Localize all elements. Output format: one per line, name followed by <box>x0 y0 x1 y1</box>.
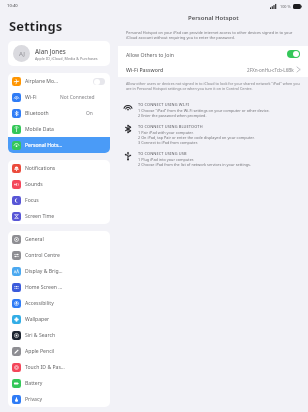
button[interactable]: Allow Others to Join toggle <box>287 50 300 58</box>
button[interactable]: Privacy <box>8 391 110 407</box>
button[interactable]: Battery <box>8 375 110 391</box>
button[interactable]: Display & Brightness <box>8 263 110 279</box>
button[interactable]: Wallpaper <box>8 311 110 327</box>
staticText: Battery <box>25 380 43 387</box>
staticText: 1 Plug iPad into your computer. <box>138 157 194 162</box>
button[interactable]: AJ <box>8 41 110 66</box>
other: Bluetooth <box>123 124 133 134</box>
button[interactable]: Airplane Mode toggle <box>93 78 105 85</box>
other: Wi-Fi <box>123 102 133 112</box>
staticText: Airplane Mode <box>25 78 59 85</box>
staticText: Wallpaper <box>25 316 50 323</box>
staticText: 2 Choose iPad from the list of network s… <box>138 162 251 167</box>
button[interactable]: Control Centre <box>8 247 110 263</box>
staticText: Screen Time <box>25 213 55 220</box>
staticText: Allow Others to Join <box>126 51 287 58</box>
staticText: On <box>86 110 93 117</box>
staticText: 2 On iPad, tap Pair or enter the code di… <box>138 135 255 140</box>
button[interactable]: General <box>8 231 110 247</box>
button[interactable]: Bluetooth <box>8 105 110 121</box>
staticText: Mobile Data <box>25 126 54 133</box>
button[interactable]: Touch ID & Passcode <box>8 359 110 375</box>
staticText: Notifications <box>25 165 56 172</box>
button[interactable]: Apple Pencil <box>8 343 110 359</box>
staticText: TO CONNECT USING USB <box>138 151 187 156</box>
staticText: 1 Pair iPad with your computer. <box>138 130 194 135</box>
button[interactable]: Airplane Mode <box>8 73 110 89</box>
staticText: Wi-Fi Password <box>126 66 247 73</box>
staticText: Not Connected <box>60 94 95 101</box>
staticText: AJ <box>19 50 25 58</box>
staticText: 2FXn-onHu-cTcb-L6Bk <box>247 67 294 73</box>
staticText: 3 Connect to iPad from computer. <box>138 140 198 145</box>
staticText: TO CONNECT USING WI-FI <box>138 102 190 107</box>
button[interactable]: Siri & Search <box>8 327 110 343</box>
button[interactable]: Wi-Fi Password <box>126 62 300 77</box>
button[interactable]: Focus <box>8 192 110 208</box>
button[interactable]: Notifications <box>8 160 110 176</box>
staticText: Accessibility <box>25 300 54 307</box>
button[interactable]: Wi-Fi <box>8 89 110 105</box>
staticText: Bluetooth <box>25 110 49 117</box>
staticText: Apple Pencil <box>25 348 55 355</box>
button[interactable]: Accessibility <box>8 295 110 311</box>
staticText: Privacy <box>25 396 42 403</box>
staticText: General <box>25 236 44 243</box>
staticText: 100 % <box>280 4 291 9</box>
staticText: Control Centre <box>25 252 60 259</box>
staticText: Sounds <box>25 181 43 188</box>
staticText: Personal Hotspot <box>188 14 239 22</box>
staticText: Wi-Fi <box>25 94 37 101</box>
staticText: Personal Hotspot on your iPad can provid… <box>126 30 300 40</box>
button[interactable]: Personal Hotspot <box>8 137 110 153</box>
staticText: 2 Enter the password when prompted. <box>138 113 207 118</box>
staticText: Touch ID & Passcode <box>25 364 65 371</box>
staticText: Home Screen & Dock <box>25 284 65 291</box>
staticText: Apple ID, iCloud, Media & Purchases <box>35 56 98 61</box>
button[interactable]: Sounds <box>8 176 110 192</box>
button[interactable]: Screen Time <box>8 208 110 224</box>
staticText: 10:40 <box>7 3 18 9</box>
button[interactable]: Allow Others to Join <box>126 46 300 62</box>
button[interactable]: Home Screen & Dock <box>8 279 110 295</box>
staticText: Siri & Search <box>25 332 56 339</box>
staticText: Allow other users or devices not signed … <box>126 81 300 91</box>
staticText: Focus <box>25 197 39 204</box>
other: USB <box>123 151 133 161</box>
staticText: Display & Brightness <box>25 268 65 275</box>
staticText: TO CONNECT USING BLUETOOTH <box>138 124 203 129</box>
staticText: Settings <box>9 17 63 35</box>
staticText: 1 Choose "iPad" from the Wi-Fi settings … <box>138 108 270 113</box>
staticText: Alan Jones <box>35 47 66 55</box>
staticText: Personal Hotspot <box>25 142 65 149</box>
button[interactable]: Mobile Data <box>8 121 110 137</box>
